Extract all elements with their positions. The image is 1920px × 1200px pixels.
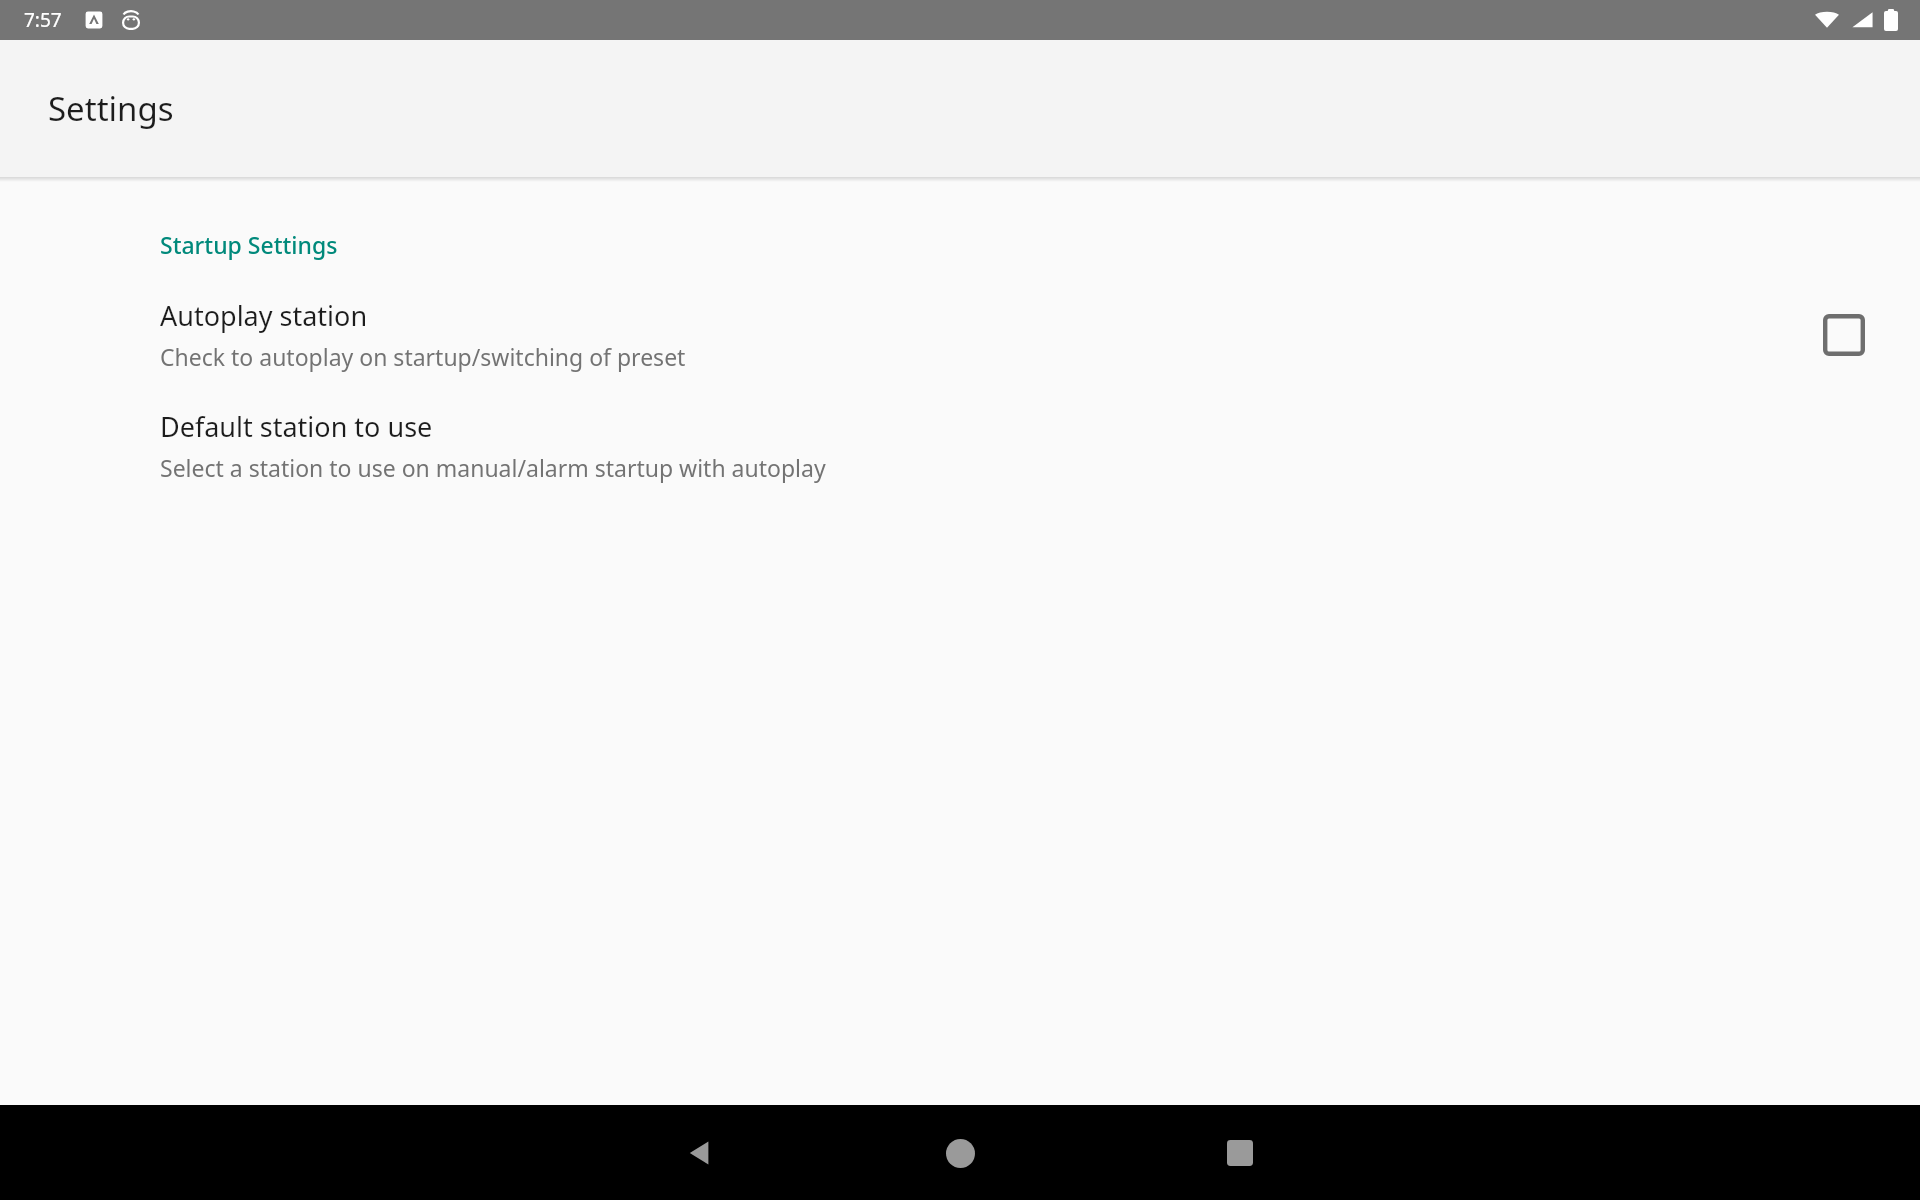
button[interactable]: Autoplay station checkbox [1808, 299, 1880, 371]
button[interactable]: Autoplay station [0, 293, 1920, 376]
staticText: Default station to use [160, 408, 433, 445]
button[interactable]: Home [924, 1117, 996, 1189]
staticText: Select a station to use on manual/alarm … [160, 452, 826, 483]
button[interactable]: Recent apps [1204, 1117, 1276, 1189]
staticText: Startup Settings [160, 229, 338, 260]
staticText: Check to autoplay on startup/switching o… [160, 341, 686, 372]
button[interactable]: Back [664, 1117, 736, 1189]
button[interactable]: Default station to use [0, 404, 1920, 487]
staticText: Autoplay station [160, 297, 368, 334]
staticText: Settings [48, 86, 174, 131]
staticText: 7:57 [24, 7, 62, 33]
